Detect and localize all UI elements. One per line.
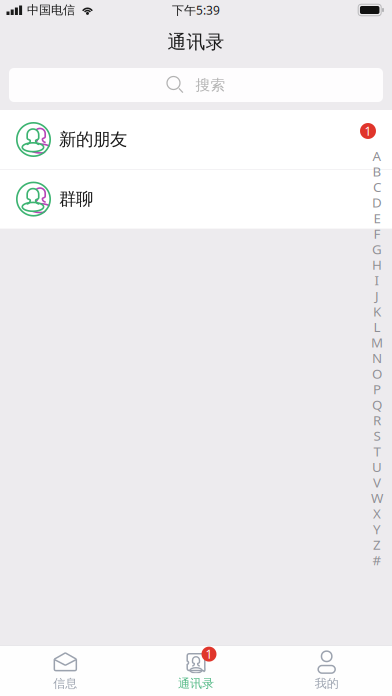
button[interactable]: 群聊 bbox=[0, 170, 392, 229]
staticText: N bbox=[372, 349, 382, 367]
staticText: H bbox=[372, 256, 382, 273]
staticText: P bbox=[373, 380, 381, 398]
staticText: 通讯录 bbox=[167, 30, 224, 53]
staticText: E bbox=[373, 209, 380, 227]
staticText: 下午5:39 bbox=[172, 2, 220, 18]
staticText: 我的 bbox=[315, 676, 339, 691]
staticText: G bbox=[372, 240, 382, 258]
staticText: R bbox=[373, 411, 381, 429]
staticText: A bbox=[372, 147, 381, 165]
button[interactable]: 1 bbox=[131, 646, 261, 696]
staticText: X bbox=[373, 505, 381, 522]
staticText: Y bbox=[373, 520, 381, 538]
staticText: 新的朋友 bbox=[59, 129, 127, 150]
staticText: D bbox=[372, 194, 382, 211]
button[interactable]: 搜索 bbox=[9, 68, 383, 102]
staticText: C bbox=[373, 178, 381, 196]
staticText: 1 bbox=[205, 646, 212, 662]
staticText: 搜索 bbox=[195, 76, 225, 94]
staticText: S bbox=[373, 427, 380, 444]
staticText: M bbox=[371, 333, 383, 351]
staticText: 群聊 bbox=[59, 188, 93, 210]
staticText: # bbox=[372, 551, 381, 569]
staticText: 中国电信 bbox=[27, 3, 75, 17]
staticText: 1 bbox=[364, 123, 371, 139]
staticText: I bbox=[374, 271, 379, 289]
staticText: V bbox=[373, 473, 381, 491]
staticText: 通讯录 bbox=[178, 676, 214, 691]
staticText: W bbox=[371, 489, 383, 507]
button[interactable]: 信息 bbox=[0, 646, 131, 696]
staticText: K bbox=[373, 302, 381, 320]
staticText: B bbox=[372, 162, 381, 180]
button[interactable]: 新的朋友 bbox=[0, 110, 392, 169]
staticText: 信息 bbox=[53, 676, 77, 691]
staticText: F bbox=[373, 225, 380, 242]
button[interactable]: 我的 bbox=[261, 646, 392, 696]
staticText: L bbox=[373, 318, 380, 336]
staticText: J bbox=[375, 287, 379, 305]
staticText: U bbox=[372, 458, 382, 476]
staticText: Z bbox=[373, 536, 381, 553]
staticText: O bbox=[372, 365, 382, 382]
staticText: Q bbox=[372, 396, 382, 413]
staticText: T bbox=[373, 442, 380, 460]
